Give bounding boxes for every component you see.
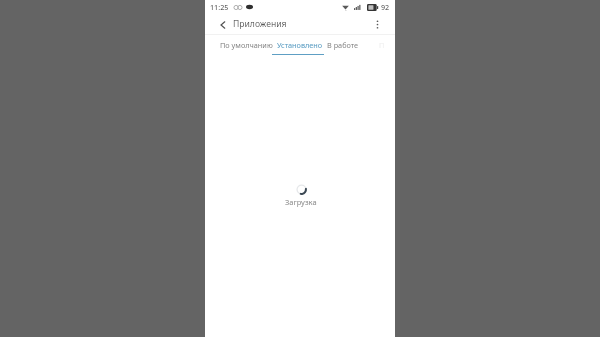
staticText: По умолчанию (220, 40, 273, 50)
staticText: 92 (381, 2, 390, 12)
button[interactable]: По умолчанию (217, 34, 276, 55)
button[interactable]: Назад (214, 16, 231, 33)
button[interactable]: Ещё (362, 34, 388, 55)
staticText: П (379, 40, 385, 50)
button[interactable]: Дополнительно (369, 16, 386, 33)
staticText: Загрузка (285, 197, 317, 207)
staticText: В работе (327, 40, 359, 50)
staticText: 11:25 (210, 2, 229, 12)
staticText: Установлено (277, 40, 323, 50)
button[interactable]: В работе (324, 34, 362, 55)
staticText: Приложения (233, 18, 287, 30)
button[interactable]: Установлено (276, 34, 324, 55)
